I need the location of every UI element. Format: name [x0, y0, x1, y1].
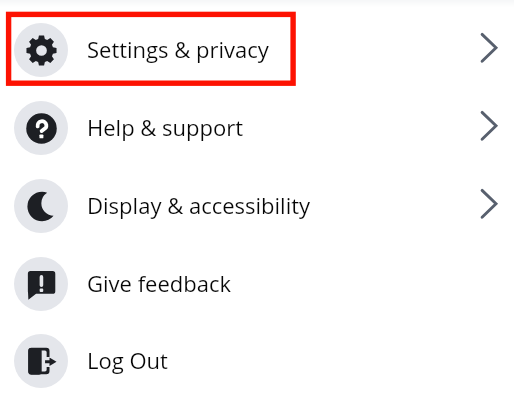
button[interactable]: Log Out — [0, 323, 514, 399]
other: Open Display & accessibility — [472, 189, 506, 223]
staticText: Display & accessibility — [87, 190, 311, 220]
other: Open Help & support — [472, 111, 506, 145]
staticText: Help & support — [87, 112, 244, 142]
button[interactable]: Help & support — [0, 89, 514, 167]
other: Open Settings & privacy — [472, 33, 506, 67]
button[interactable]: Give feedback — [0, 245, 514, 323]
staticText: Log Out — [87, 345, 168, 375]
button[interactable]: Display & accessibility — [0, 167, 514, 245]
button[interactable]: Settings & privacy — [0, 11, 514, 89]
staticText: Give feedback — [87, 268, 232, 298]
staticText: Settings & privacy — [87, 34, 269, 64]
